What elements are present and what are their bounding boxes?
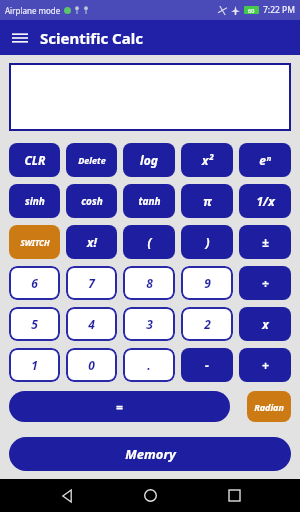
staticText: cosh (81, 194, 103, 208)
button[interactable]: - (181, 348, 233, 382)
button[interactable]: 6 (9, 266, 60, 300)
staticText: tanh (138, 194, 161, 208)
staticText: SWITCH (20, 237, 50, 248)
staticText: Delete (78, 154, 106, 166)
staticText: Memory (125, 445, 176, 463)
staticText: x² (202, 152, 213, 168)
staticText: x! (87, 234, 97, 250)
button[interactable]: 0 (66, 348, 117, 382)
staticText: CLR (24, 152, 46, 168)
button[interactable]: tanh (123, 184, 175, 218)
button[interactable]: ) (181, 225, 233, 259)
staticText: Radian (254, 401, 284, 413)
button[interactable]: 5 (9, 307, 60, 341)
button[interactable]: Home (133, 479, 167, 512)
button[interactable] (9, 63, 291, 131)
staticText: 9 (204, 275, 211, 291)
staticText: 1 (31, 357, 38, 373)
staticText: = (116, 399, 123, 415)
staticText: eⁿ (259, 152, 271, 168)
button[interactable]: Recent apps (217, 479, 251, 512)
button[interactable]: 1 (9, 348, 60, 382)
button[interactable]: CLR (9, 143, 60, 177)
button[interactable]: x² (181, 143, 233, 177)
staticText: 6 (31, 275, 38, 291)
staticText: - (205, 357, 209, 373)
staticText: + (262, 357, 269, 373)
staticText: sinh (25, 194, 45, 208)
button[interactable]: + (239, 348, 291, 382)
button[interactable]: π (181, 184, 233, 218)
staticText: 4 (88, 316, 95, 332)
button[interactable]: log (123, 143, 175, 177)
button[interactable]: = (9, 391, 230, 422)
staticText: π (203, 193, 212, 209)
staticText: 5 (31, 316, 38, 332)
staticText: 2 (204, 316, 211, 332)
staticText: 1/x (256, 193, 275, 209)
button[interactable]: Radian (247, 391, 291, 422)
button[interactable]: 3 (123, 307, 175, 341)
staticText: 60 (248, 7, 255, 14)
button[interactable]: ( (123, 225, 175, 259)
staticText: 7:22 PM (263, 4, 295, 16)
button[interactable]: ÷ (239, 266, 291, 300)
button[interactable]: ± (239, 225, 291, 259)
button[interactable]: 2 (181, 307, 233, 341)
button[interactable]: Back (50, 479, 84, 512)
button[interactable]: Open navigation menu (0, 20, 40, 55)
staticText: ) (205, 234, 210, 250)
button[interactable]: eⁿ (239, 143, 291, 177)
staticText: x (262, 316, 269, 332)
button[interactable]: 4 (66, 307, 117, 341)
button[interactable]: Delete (66, 143, 117, 177)
button[interactable]: x! (66, 225, 117, 259)
staticText: log (140, 152, 158, 168)
staticText: Scientific Calc (40, 28, 143, 48)
button[interactable]: 1/x (239, 184, 291, 218)
staticText: ± (262, 234, 269, 250)
staticText: 8 (146, 275, 153, 291)
button[interactable]: 7 (66, 266, 117, 300)
staticText: ( (147, 234, 152, 250)
button[interactable]: x (239, 307, 291, 341)
staticText: ÷ (262, 275, 269, 291)
button[interactable]: 8 (123, 266, 175, 300)
button[interactable]: SWITCH (9, 225, 60, 259)
button[interactable]: . (123, 348, 175, 382)
button[interactable]: cosh (66, 184, 117, 218)
button[interactable]: 9 (181, 266, 233, 300)
staticText: 0 (88, 357, 95, 373)
staticText: 7 (88, 275, 95, 291)
staticText: 3 (146, 316, 153, 332)
staticText: . (147, 357, 151, 373)
button[interactable]: Memory (9, 437, 291, 471)
button[interactable]: sinh (9, 184, 60, 218)
staticText: Airplane mode (5, 5, 61, 16)
